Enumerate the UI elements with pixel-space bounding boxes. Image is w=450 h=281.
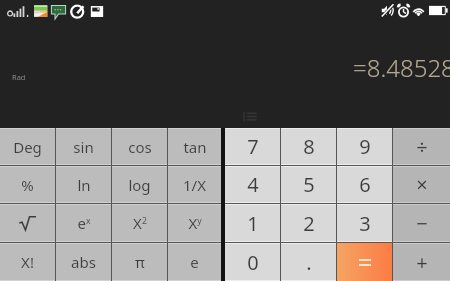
staticText: 1/X (183, 175, 206, 195)
staticText: sin (73, 137, 94, 157)
staticText: cos (128, 137, 152, 157)
button[interactable] (0, 204, 55, 242)
staticText: 3 (359, 210, 371, 237)
button[interactable]: 5 (281, 166, 336, 203)
button[interactable]: × (393, 166, 450, 203)
staticText: 5 (303, 171, 315, 198)
staticText: π (135, 252, 145, 272)
staticText: − (416, 210, 428, 237)
staticText: 8 (303, 133, 315, 160)
staticText: 4 (247, 171, 259, 198)
button[interactable]: 1 (225, 204, 280, 242)
staticText: 7 (247, 133, 259, 160)
staticText: e (190, 252, 199, 272)
staticText: Rad (12, 72, 26, 82)
button[interactable]: log (112, 166, 167, 203)
staticText: × (416, 171, 428, 198)
button[interactable]: Xy (168, 204, 221, 242)
button[interactable]: X! (0, 243, 55, 281)
button[interactable]: 1/X (168, 166, 221, 203)
staticText: Xy (188, 213, 202, 233)
button[interactable]: . (281, 243, 336, 281)
staticText: ÷ (416, 133, 428, 160)
button[interactable]: 3 (337, 204, 392, 242)
button[interactable]: 6 (337, 166, 392, 203)
staticText: X2 (133, 213, 147, 233)
button[interactable]: 4 (225, 166, 280, 203)
button[interactable]: 8 (281, 128, 336, 165)
button[interactable]: tan (168, 128, 221, 165)
staticText: 1 (247, 210, 259, 237)
button[interactable]: 9 (337, 128, 392, 165)
button[interactable]: sin (56, 128, 111, 165)
button[interactable]: % (0, 166, 55, 203)
staticText: abs (71, 252, 96, 272)
staticText: 0 (247, 249, 259, 276)
button[interactable]: Deg (0, 128, 55, 165)
button[interactable]: + (393, 243, 450, 281)
staticText: Deg (13, 137, 42, 157)
staticText: + (416, 249, 428, 276)
staticText: =8.48528 (353, 51, 450, 84)
staticText: ex (77, 213, 91, 233)
staticText: ln (77, 175, 91, 195)
button[interactable]: cos (112, 128, 167, 165)
button[interactable]: 7 (225, 128, 280, 165)
staticText: % (21, 175, 34, 195)
staticText: tan (183, 137, 207, 157)
button[interactable]: ln (56, 166, 111, 203)
button[interactable]: abs (56, 243, 111, 281)
button[interactable]: ex (56, 204, 111, 242)
button[interactable]: 2 (281, 204, 336, 242)
button[interactable]: π (112, 243, 167, 281)
button[interactable]: Equals (337, 243, 392, 281)
button[interactable]: − (393, 204, 450, 242)
staticText: . (306, 249, 312, 276)
staticText: 6 (359, 171, 371, 198)
staticText: 2 (303, 210, 315, 237)
staticText: X! (21, 252, 34, 272)
button[interactable]: 0 (225, 243, 280, 281)
button[interactable]: X2 (112, 204, 167, 242)
staticText: 9 (359, 133, 371, 160)
button[interactable]: ÷ (393, 128, 450, 165)
staticText: log (128, 175, 151, 195)
button[interactable]: e (168, 243, 221, 281)
